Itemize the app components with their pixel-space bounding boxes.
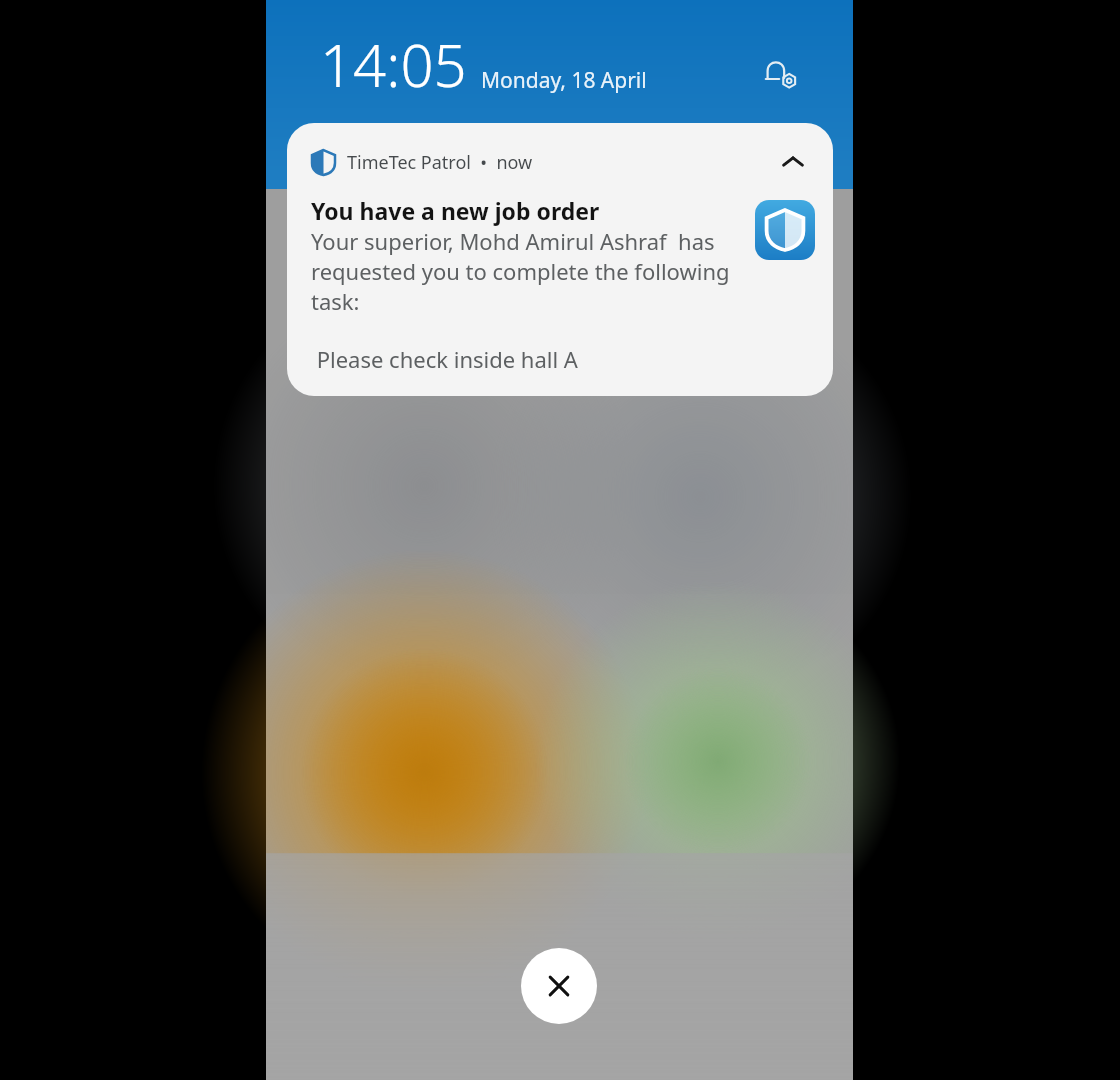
button[interactable]: Dismiss notifications xyxy=(521,948,597,1024)
button[interactable]: TimeTec Patrol • now xyxy=(287,123,833,396)
staticText: Your superior, Mohd Amirul Ashraf has re… xyxy=(311,226,741,316)
staticText: 14:05 xyxy=(320,25,467,104)
button[interactable]: Collapse notification xyxy=(771,140,815,184)
button[interactable]: TimeTec Patrol app icon xyxy=(755,200,815,260)
staticText: TimeTec Patrol • now xyxy=(347,150,533,175)
button[interactable]: Alarm and notification settings xyxy=(760,53,804,97)
staticText: Monday, 18 April xyxy=(481,66,647,95)
staticText: You have a new job order xyxy=(311,195,600,226)
staticText: Please check inside hall A xyxy=(311,344,578,374)
